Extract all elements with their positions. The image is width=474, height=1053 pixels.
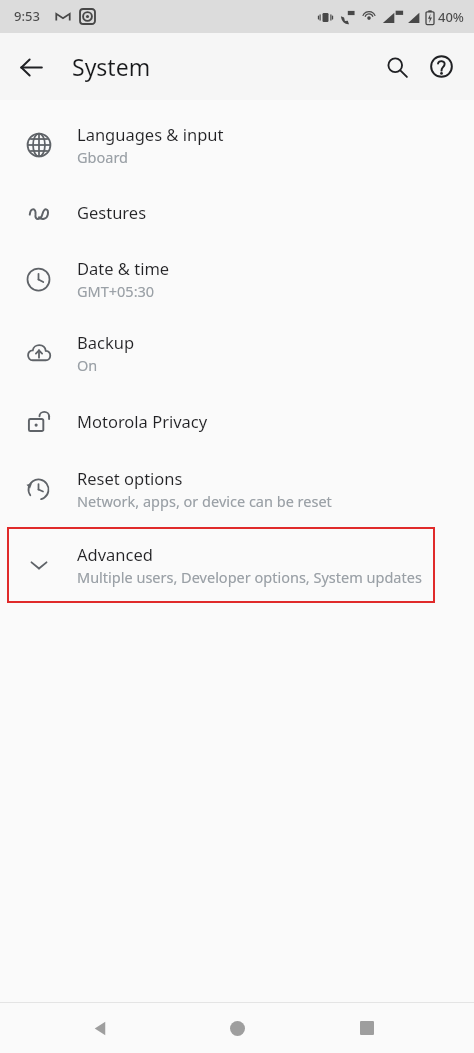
button[interactable]: Search	[374, 44, 419, 89]
staticText: Advanced	[77, 543, 153, 565]
staticText: Multiple users, Developer options, Syste…	[77, 567, 422, 587]
button[interactable]: Languages & input	[0, 108, 474, 182]
staticText: Languages & input	[77, 123, 224, 145]
staticText: 9:53	[14, 7, 40, 25]
button[interactable]: Backup	[0, 316, 474, 390]
staticText: System	[72, 51, 151, 82]
button[interactable]: Recent apps	[345, 1006, 389, 1050]
staticText: Reset options	[77, 467, 183, 489]
button[interactable]: Back	[9, 45, 53, 89]
button[interactable]: Reset options	[0, 452, 474, 526]
staticText: Network, apps, or device can be reset	[77, 491, 332, 511]
staticText: Motorola Privacy	[77, 410, 208, 432]
staticText: On	[77, 355, 98, 375]
staticText: Backup	[77, 331, 135, 353]
button[interactable]: Advanced	[0, 527, 474, 603]
button[interactable]: Help	[419, 44, 464, 89]
staticText: Gestures	[77, 201, 147, 223]
button[interactable]: Date & time	[0, 242, 474, 316]
staticText: Gboard	[77, 147, 128, 167]
button[interactable]: Gestures	[0, 182, 474, 242]
staticText: Date & time	[77, 257, 170, 279]
button[interactable]: Back	[78, 1006, 122, 1050]
staticText: GMT+05:30	[77, 281, 155, 301]
button[interactable]: Home	[215, 1006, 259, 1050]
staticText: 40%	[438, 8, 464, 26]
button[interactable]: Motorola Privacy	[0, 390, 474, 452]
